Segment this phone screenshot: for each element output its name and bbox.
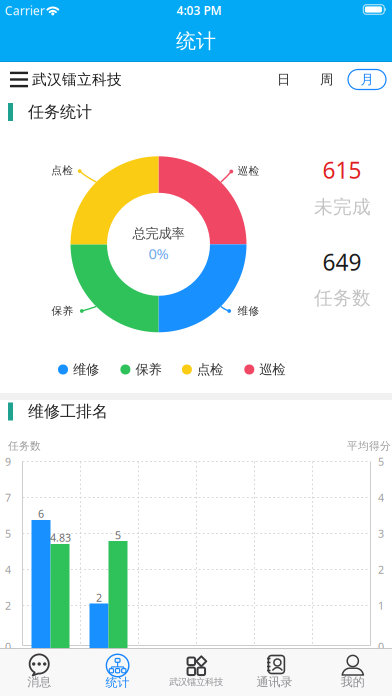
staticText: 5 bbox=[115, 528, 121, 542]
staticText: 615 bbox=[322, 155, 361, 185]
staticText: 月 bbox=[360, 71, 373, 88]
button[interactable] bbox=[5, 65, 33, 93]
button[interactable]: 消息 bbox=[0, 648, 78, 695]
staticText: 点检 bbox=[197, 361, 223, 378]
staticText: 点检 bbox=[51, 164, 73, 177]
staticText: 0 bbox=[378, 639, 384, 654]
staticText: 保养 bbox=[51, 304, 73, 317]
button[interactable]: 我的 bbox=[314, 648, 392, 695]
staticText: 武汉镭立科技 bbox=[169, 676, 223, 688]
staticText: 0 bbox=[5, 639, 11, 654]
staticText: 保养 bbox=[135, 361, 161, 378]
staticText: 总完成率 bbox=[132, 225, 184, 242]
staticText: 9 bbox=[5, 454, 11, 469]
button[interactable]: 日 bbox=[0, 0, 392, 696]
staticText: 未完成 bbox=[314, 195, 371, 218]
staticText: 平均得分 bbox=[347, 439, 391, 452]
staticText: 我的 bbox=[341, 675, 365, 689]
staticText: 维修 bbox=[238, 304, 260, 317]
staticText: 通讯录 bbox=[256, 675, 292, 689]
staticText: 4 bbox=[378, 490, 384, 505]
staticText: 武汉镭立科技 bbox=[32, 70, 122, 88]
staticText: 统计 bbox=[106, 675, 130, 690]
staticText: 5 bbox=[378, 454, 384, 469]
staticText: 0% bbox=[148, 244, 168, 263]
staticText: 3 bbox=[378, 526, 384, 541]
staticText: 统计 bbox=[176, 29, 216, 53]
staticText: 巡检 bbox=[259, 361, 285, 378]
staticText: 4 bbox=[5, 562, 11, 577]
button[interactable]: 通讯录 bbox=[235, 648, 313, 695]
staticText: 7 bbox=[5, 490, 11, 505]
staticText: 消息 bbox=[27, 675, 51, 689]
staticText: 日 bbox=[277, 71, 290, 88]
button[interactable]: 武汉镭立科技 bbox=[157, 648, 235, 695]
button[interactable]: 统计 bbox=[79, 648, 157, 695]
staticText: 649 bbox=[322, 247, 361, 277]
staticText: 4.83 bbox=[50, 530, 71, 545]
staticText: 2 bbox=[5, 598, 11, 613]
button[interactable]: 月 bbox=[0, 0, 392, 696]
staticText: 巡检 bbox=[237, 164, 259, 177]
staticText: 周 bbox=[320, 71, 333, 88]
staticText: 2 bbox=[378, 562, 384, 577]
staticText: 维修 bbox=[73, 361, 99, 378]
staticText: 6 bbox=[38, 506, 44, 521]
staticText: 4:03 PM bbox=[176, 2, 221, 18]
staticText: 任务数 bbox=[8, 439, 41, 452]
staticText: 任务统计 bbox=[28, 102, 92, 122]
staticText: 维修工排名 bbox=[28, 402, 108, 421]
button[interactable]: 周 bbox=[0, 0, 392, 696]
staticText: Carrier bbox=[5, 3, 45, 19]
staticText: 5 bbox=[5, 526, 11, 541]
staticText: 任务数 bbox=[314, 286, 371, 309]
staticText: 1 bbox=[378, 598, 384, 613]
staticText: 2 bbox=[96, 590, 102, 605]
